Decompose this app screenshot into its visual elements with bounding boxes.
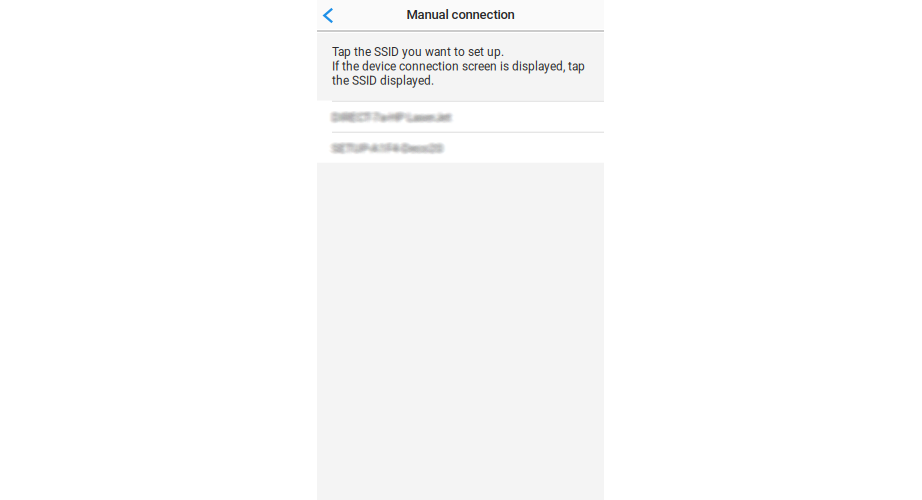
staticText: SETUP-A1F4-Deco20: [334, 141, 445, 155]
staticText: SETUP-A1F4-Deco20: [331, 139, 442, 153]
staticText: DIRECT-7a-HP LaserJet: [334, 112, 453, 126]
staticText: SETUP-A1F4-Deco20: [332, 140, 443, 154]
staticText: SETUP-A1F4-Deco20: [333, 143, 444, 157]
button[interactable]: Wi-Fi network: [317, 101, 604, 132]
button[interactable]: Wi-Fi network: [317, 132, 604, 163]
staticText: SETUP-A1F4-Deco20: [331, 143, 442, 157]
staticText: the SSID displayed.: [332, 74, 434, 88]
staticText: SETUP-A1F4-Deco20: [335, 141, 446, 155]
staticText: SETUP-A1F4-Deco20: [331, 141, 442, 155]
staticText: SETUP-A1F4-Deco20: [330, 140, 441, 154]
staticText: SETUP-A1F4-Deco20: [329, 142, 440, 156]
staticText: SETUP-A1F4-Deco20: [334, 142, 445, 156]
staticText: DIRECT-7a-HP LaserJet: [331, 109, 450, 123]
staticText: SETUP-A1F4-Deco20: [334, 140, 445, 154]
staticText: SETUP-A1F4-Deco20: [332, 139, 443, 153]
button[interactable]: Back: [317, 0, 357, 29]
staticText: SETUP-A1F4-Deco20: [330, 139, 441, 153]
staticText: DIRECT-7a-HP LaserJet: [331, 108, 450, 122]
staticText: DIRECT-7a-HP LaserJet: [329, 109, 448, 123]
staticText: If the device connection screen is displ…: [332, 59, 585, 73]
staticText: DIRECT-7a-HP LaserJet: [332, 111, 451, 125]
staticText: SETUP-A1F4-Deco20: [336, 141, 447, 155]
staticText: DIRECT-7a-HP LaserJet: [334, 111, 453, 125]
staticText: DIRECT-7a-HP LaserJet: [335, 111, 454, 125]
staticText: Tap the SSID you want to set up.: [332, 45, 504, 59]
staticText: DIRECT-7a-HP LaserJet: [334, 110, 453, 124]
staticText: DIRECT-7a-HP LaserJet: [328, 110, 447, 124]
staticText: SETUP-A1F4-Deco20: [332, 143, 443, 157]
staticText: DIRECT-7a-HP LaserJet: [331, 112, 450, 126]
staticText: SETUP-A1F4-Deco20: [331, 142, 442, 156]
staticText: DIRECT-7a-HP LaserJet: [333, 109, 452, 123]
staticText: DIRECT-7a-HP LaserJet: [330, 111, 449, 125]
staticText: DIRECT-7a-HP LaserJet: [329, 111, 448, 125]
staticText: SETUP-A1F4-Deco20: [331, 140, 442, 154]
staticText: DIRECT-7a-HP LaserJet: [330, 112, 449, 126]
staticText: DIRECT-7a-HP LaserJet: [335, 109, 454, 123]
staticText: DIRECT-7a-HP LaserJet: [333, 111, 452, 125]
staticText: SETUP-A1F4-Deco20: [333, 141, 444, 155]
staticText: DIRECT-7a-HP LaserJet: [334, 108, 453, 122]
staticText: DIRECT-7a-HP LaserJet: [330, 110, 449, 124]
staticText: DIRECT-7a-HP LaserJet: [332, 109, 451, 123]
staticText: DIRECT-7a-HP LaserJet: [333, 112, 452, 126]
staticText: SETUP-A1F4-Deco20: [330, 143, 441, 157]
staticText: SETUP-A1F4-Deco20: [334, 143, 445, 157]
staticText: DIRECT-7a-HP LaserJet: [333, 108, 452, 122]
staticText: Manual connection: [406, 7, 514, 22]
staticText: DIRECT-7a-HP LaserJet: [333, 110, 452, 124]
staticText: SETUP-A1F4-Deco20: [329, 141, 440, 155]
staticText: SETUP-A1F4-Deco20: [333, 142, 444, 156]
staticText: DIRECT-7a-HP LaserJet: [329, 110, 448, 124]
staticText: DIRECT-7a-HP LaserJet: [330, 109, 449, 123]
staticText: SETUP-A1F4-Deco20: [330, 141, 441, 155]
staticText: SETUP-A1F4-Deco20: [332, 141, 443, 155]
staticText: SETUP-A1F4-Deco20: [332, 142, 443, 156]
staticText: SETUP-A1F4-Deco20: [335, 142, 446, 156]
staticText: DIRECT-7a-HP LaserJet: [332, 108, 451, 122]
staticText: SETUP-A1F4-Deco20: [330, 142, 441, 156]
staticText: SETUP-A1F4-Deco20: [329, 140, 440, 154]
staticText: SETUP-A1F4-Deco20: [334, 139, 445, 153]
staticText: DIRECT-7a-HP LaserJet: [331, 110, 450, 124]
staticText: SETUP-A1F4-Deco20: [335, 140, 446, 154]
staticText: SETUP-A1F4-Deco20: [328, 141, 439, 155]
staticText: DIRECT-7a-HP LaserJet: [332, 110, 451, 124]
staticText: DIRECT-7a-HP LaserJet: [331, 111, 450, 125]
staticText: DIRECT-7a-HP LaserJet: [336, 110, 455, 124]
staticText: DIRECT-7a-HP LaserJet: [335, 110, 454, 124]
staticText: SETUP-A1F4-Deco20: [333, 139, 444, 153]
staticText: DIRECT-7a-HP LaserJet: [330, 108, 449, 122]
staticText: DIRECT-7a-HP LaserJet: [332, 112, 451, 126]
staticText: SETUP-A1F4-Deco20: [333, 140, 444, 154]
staticText: DIRECT-7a-HP LaserJet: [334, 109, 453, 123]
